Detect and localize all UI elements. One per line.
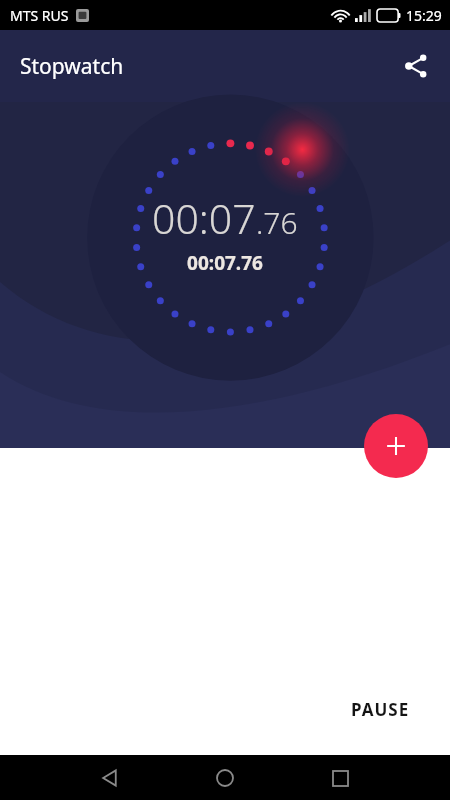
button[interactable]: Back bbox=[90, 758, 130, 798]
staticText: MTS RUS bbox=[10, 6, 69, 25]
staticText: Stopwatch bbox=[20, 52, 124, 81]
button[interactable]: Recents bbox=[320, 758, 360, 798]
button[interactable]: Share bbox=[392, 42, 440, 90]
button[interactable]: PAUSE bbox=[310, 683, 450, 735]
staticText: .76 bbox=[256, 202, 298, 243]
button[interactable]: Add lap bbox=[364, 414, 428, 478]
button[interactable]: Home bbox=[205, 758, 245, 798]
staticText: 00:07 bbox=[152, 190, 256, 246]
staticText: 15:29 bbox=[406, 6, 442, 25]
staticText: 00:07.76 bbox=[187, 250, 263, 276]
staticText: PAUSE bbox=[351, 698, 410, 721]
